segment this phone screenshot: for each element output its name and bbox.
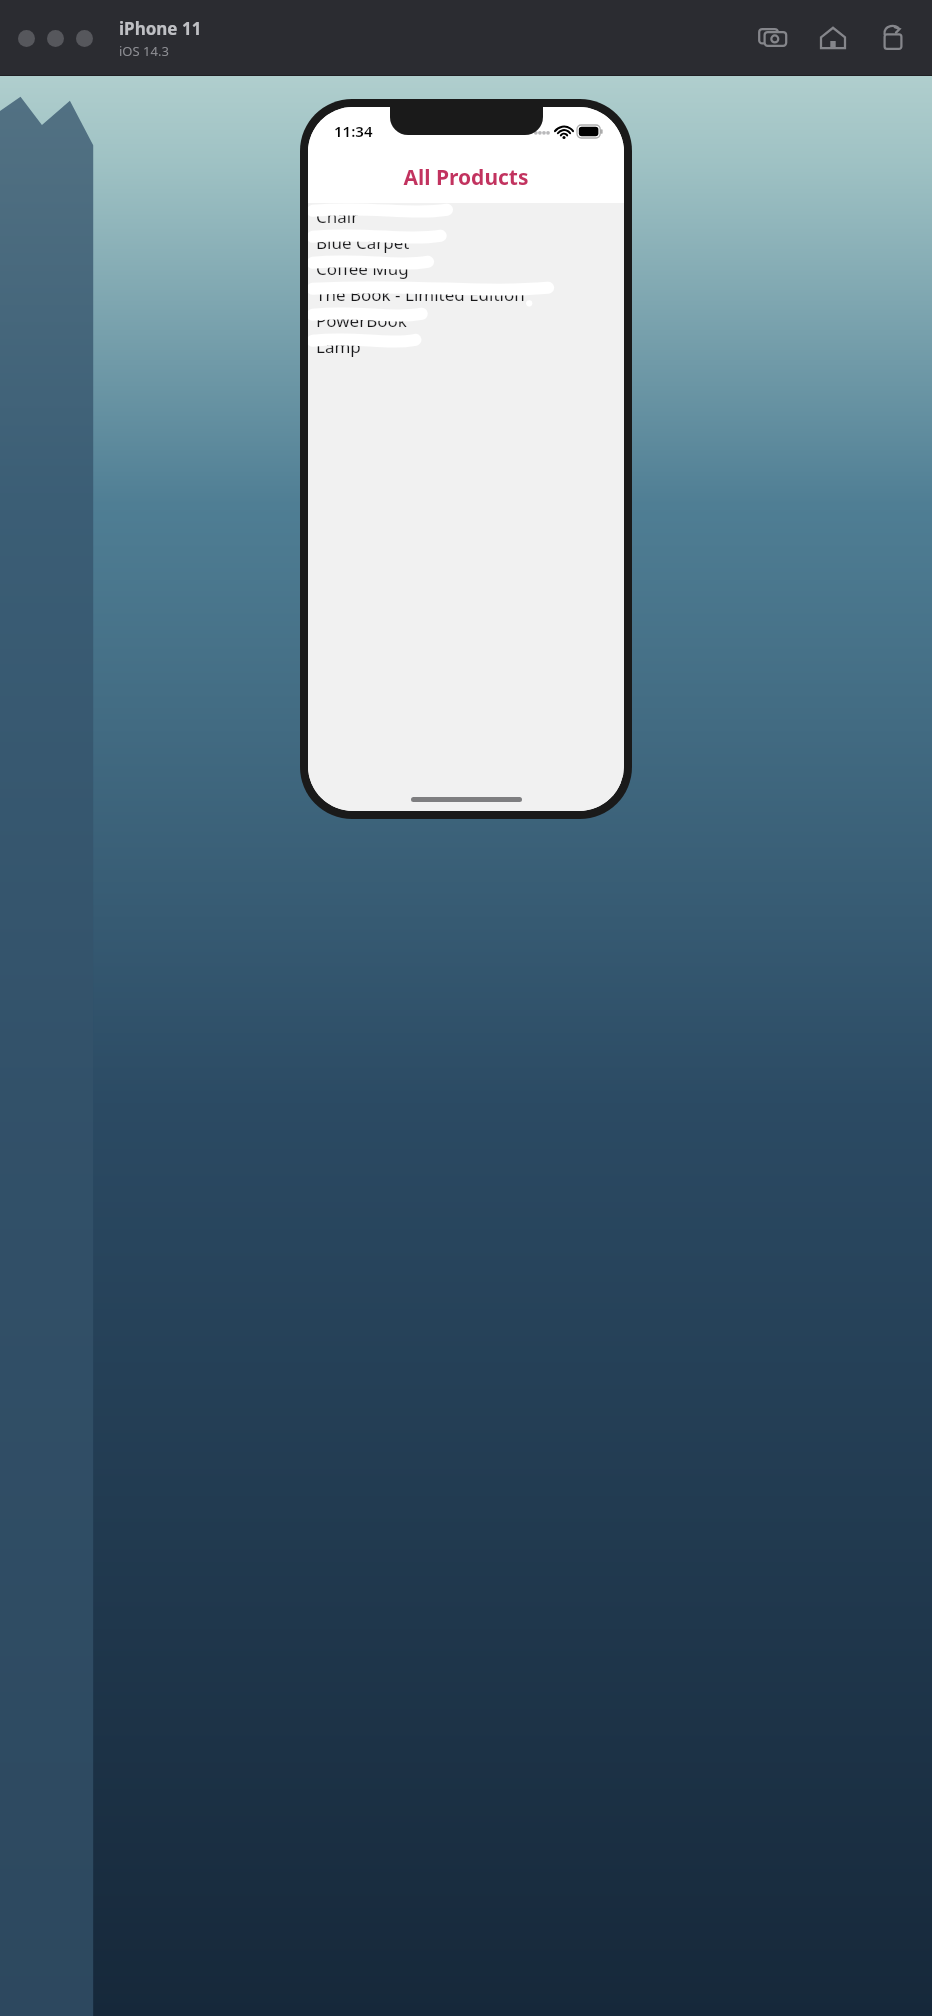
button[interactable]: PowerBook — [308, 307, 624, 333]
button[interactable]: Lamp — [308, 333, 624, 359]
staticText: 11:34 — [334, 121, 373, 141]
button[interactable]: Chair — [308, 203, 624, 229]
staticText: Blue Carpet — [316, 231, 410, 254]
button[interactable]: Take screenshot — [754, 19, 792, 57]
button[interactable]: Coffee Mug — [308, 255, 624, 281]
staticText: Chair — [316, 205, 359, 228]
button[interactable]: Home — [814, 19, 852, 57]
staticText: PowerBook — [316, 309, 407, 332]
button[interactable]: Window control — [76, 30, 93, 47]
staticText: iOS 14.3 — [119, 42, 169, 60]
button[interactable]: Window control — [47, 30, 64, 47]
button[interactable]: Rotate device — [874, 19, 912, 57]
staticText: Coffee Mug — [316, 257, 409, 280]
button[interactable]: Blue Carpet — [308, 229, 624, 255]
button[interactable]: The Book - Limited Edition — [308, 281, 624, 307]
staticText: The Book - Limited Edition — [316, 283, 525, 306]
staticText: iPhone 11 — [119, 17, 202, 40]
staticText: Lamp — [316, 335, 361, 358]
staticText: All Products — [403, 163, 529, 192]
button[interactable]: Window control — [18, 30, 35, 47]
